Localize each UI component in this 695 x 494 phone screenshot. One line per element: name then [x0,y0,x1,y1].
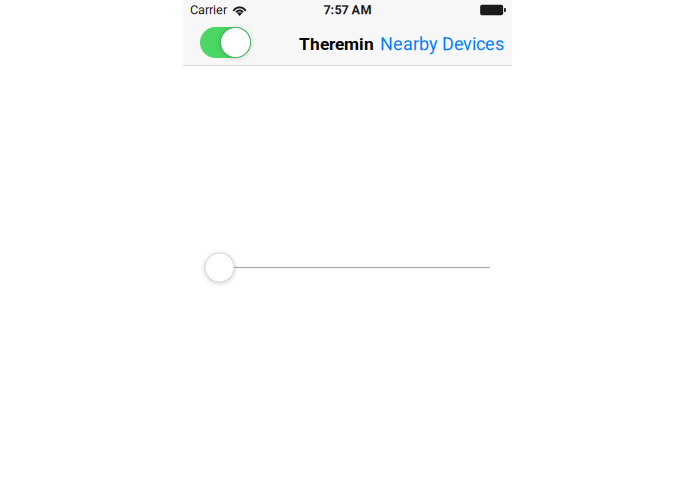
button[interactable]: Nearby Devices [380,32,504,53]
staticText: Theremin [299,34,374,54]
staticText: Nearby Devices [380,33,504,55]
button[interactable]: Pitch [205,252,491,282]
staticText: 7:57 AM [323,3,371,17]
button[interactable]: Theremin, on [200,27,251,58]
staticText: Carrier [190,3,227,17]
